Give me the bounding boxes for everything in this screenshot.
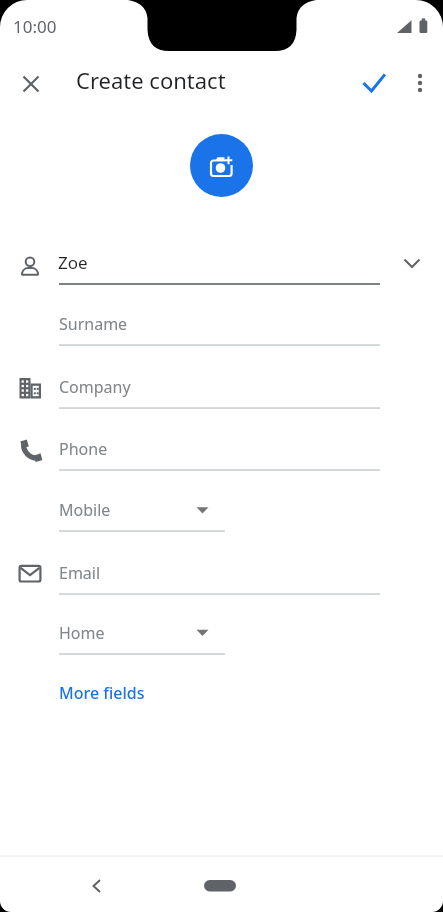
button[interactable]: [190, 134, 253, 197]
button[interactable]: [59, 305, 380, 347]
button[interactable]: [59, 368, 380, 410]
button[interactable]: [15, 68, 47, 100]
staticText: Phone: [59, 438, 108, 460]
button[interactable]: More fields: [59, 682, 145, 704]
staticText: Company: [59, 376, 131, 398]
button[interactable]: [358, 67, 390, 99]
button[interactable]: [404, 67, 436, 99]
button[interactable]: [59, 430, 380, 472]
staticText: Zoe: [58, 251, 88, 274]
staticText: Surname: [59, 313, 128, 335]
staticText: Create contact: [76, 65, 226, 95]
button[interactable]: [396, 247, 428, 279]
button[interactable]: [198, 872, 242, 900]
staticText: Email: [59, 562, 101, 584]
staticText: 10:00: [13, 15, 57, 38]
staticText: Home: [59, 622, 105, 644]
button[interactable]: [59, 492, 225, 533]
button[interactable]: [59, 615, 225, 656]
button[interactable]: [59, 244, 380, 286]
button[interactable]: [76, 864, 116, 904]
staticText: Mobile: [59, 499, 111, 521]
button[interactable]: [59, 554, 380, 596]
